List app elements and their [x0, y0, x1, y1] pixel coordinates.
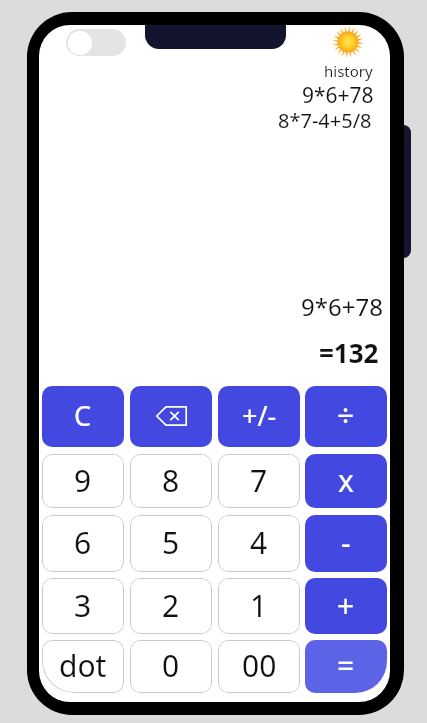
staticText: + — [337, 585, 355, 626]
button[interactable]: 7 — [218, 454, 300, 508]
staticText: 9*6+78 — [301, 290, 383, 323]
button[interactable]: C — [42, 386, 124, 447]
button[interactable]: = — [305, 640, 387, 693]
staticText: = — [337, 645, 355, 686]
staticText: 4 — [250, 522, 268, 563]
button[interactable]: 0 — [130, 640, 212, 693]
button[interactable]: +/- — [218, 386, 300, 447]
staticText: ÷ — [337, 395, 355, 436]
staticText: x — [338, 460, 354, 501]
staticText: - — [341, 522, 351, 563]
staticText: dot — [59, 645, 107, 686]
button[interactable]: 1 — [218, 578, 300, 634]
staticText: 0 — [162, 645, 180, 686]
staticText: +/- — [242, 397, 277, 434]
staticText: C — [74, 397, 92, 434]
staticText: =132 — [319, 335, 379, 370]
button[interactable] — [66, 29, 126, 56]
button[interactable]: 2 — [130, 578, 212, 634]
button[interactable]: 8 — [130, 454, 212, 508]
staticText: 2 — [162, 585, 180, 626]
button[interactable]: + — [305, 578, 387, 634]
button[interactable]: 5 — [130, 515, 212, 572]
button[interactable]: ÷ — [305, 386, 387, 447]
button[interactable]: 00 — [218, 640, 300, 693]
staticText: 00 — [242, 645, 277, 686]
button[interactable]: dot — [42, 640, 124, 693]
button[interactable]: 6 — [42, 515, 124, 572]
staticText: 5 — [162, 522, 180, 563]
button[interactable] — [130, 386, 212, 447]
staticText: 8 — [162, 460, 180, 501]
staticText: 9 — [74, 460, 92, 501]
staticText: 6 — [74, 522, 92, 563]
staticText: history — [324, 61, 373, 81]
button[interactable] — [331, 25, 365, 59]
staticText: 8*7-4+5/8 — [278, 107, 372, 134]
button[interactable]: 9 — [42, 454, 124, 508]
button[interactable]: 4 — [218, 515, 300, 572]
button[interactable]: - — [305, 515, 387, 572]
staticText: 7 — [250, 460, 268, 501]
staticText: 3 — [74, 585, 92, 626]
button[interactable]: x — [305, 454, 387, 508]
staticText: 1 — [250, 585, 268, 626]
staticText: 9*6+78 — [302, 81, 374, 110]
button[interactable]: 3 — [42, 578, 124, 634]
